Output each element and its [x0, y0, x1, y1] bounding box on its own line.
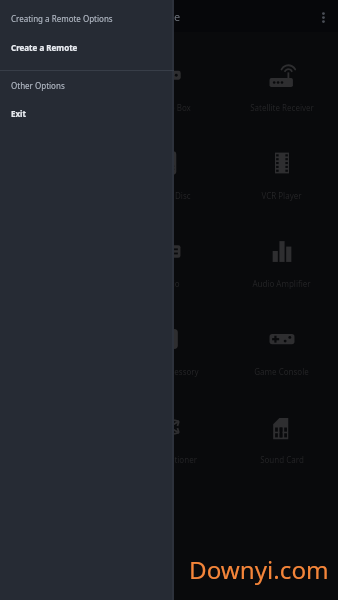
button[interactable]: Sound Card	[225, 395, 338, 483]
staticText: Remote	[140, 9, 181, 24]
button[interactable]: Other Options	[0, 70, 174, 100]
staticText: Other Options	[11, 80, 65, 91]
button[interactable]: TV	[0, 43, 112, 131]
staticText: Radio	[158, 278, 180, 289]
staticText: Blu-ray Disc	[146, 190, 191, 201]
button[interactable]: VCR Player	[225, 131, 338, 219]
button[interactable]: More options	[306, 0, 338, 32]
button[interactable]: Air Conditioner	[112, 395, 225, 483]
staticText: Game Console	[254, 366, 309, 377]
button[interactable]: Creating a Remote Options	[0, 3, 174, 33]
button[interactable]: Blu-ray Disc	[112, 131, 225, 219]
button[interactable]: Radio	[112, 219, 225, 307]
staticText: Video Accessory	[138, 366, 199, 377]
staticText: VCR Player	[261, 190, 302, 201]
button[interactable]: Audio Amplifier	[225, 219, 338, 307]
staticText: Exit	[11, 108, 26, 119]
staticText: Creating a Remote Options	[11, 13, 113, 24]
button[interactable]: Game Console	[225, 307, 338, 395]
staticText: Downyi.com	[189, 553, 329, 586]
button[interactable]: Satellite Receiver	[225, 43, 338, 131]
staticText: Air Conditioner	[140, 454, 197, 465]
staticText: Audio Amplifier	[252, 278, 311, 289]
staticText: Sound Card	[260, 454, 304, 465]
button[interactable]: Create a Remote	[0, 32, 174, 62]
staticText: Set Top Box	[147, 102, 191, 113]
staticText: Satellite Receiver	[250, 102, 314, 113]
button[interactable]: Video Accessory	[112, 307, 225, 395]
button[interactable]: Set Top Box	[112, 43, 225, 131]
button[interactable]: Exit	[0, 98, 174, 128]
staticText: Create a Remote	[11, 42, 78, 53]
